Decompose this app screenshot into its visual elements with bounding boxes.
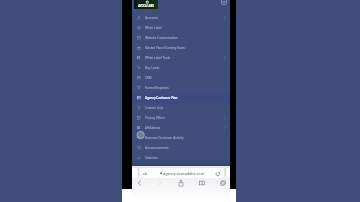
staticText: Custom Lists xyxy=(145,106,164,110)
staticText: AVOCA LABS xyxy=(134,4,158,7)
staticText: White Label xyxy=(145,26,162,30)
button[interactable]: Website Customization xyxy=(132,33,230,43)
button[interactable]: Business Customer Activity xyxy=(132,133,230,143)
button[interactable]: Affiliations xyxy=(132,123,230,133)
staticText: ᴀA xyxy=(143,171,147,175)
button[interactable]: Announcements xyxy=(132,143,230,153)
staticText: Agency Customer Plan xyxy=(145,96,178,100)
button[interactable]: CRM xyxy=(132,73,230,83)
button[interactable]: Forward xyxy=(156,178,166,188)
button[interactable]: Market Place (Coming Soon) xyxy=(132,43,230,53)
staticText: Business Customer Activity xyxy=(145,136,184,140)
button[interactable]: Close menu xyxy=(221,0,227,5)
button[interactable]: Tabs xyxy=(218,178,228,188)
staticText: Affiliations xyxy=(145,126,161,130)
button[interactable]: Avocado Labs home xyxy=(134,0,158,9)
staticText: CRM xyxy=(145,76,152,80)
staticText: Accounts xyxy=(145,16,159,20)
button[interactable]: Funnel Requests xyxy=(132,83,230,93)
button[interactable]: Back xyxy=(134,178,144,188)
staticText: White Label Tools xyxy=(145,56,171,60)
button[interactable]: ᴀA xyxy=(139,168,224,178)
staticText: agency.avocadabs.com xyxy=(163,171,205,176)
staticText: Statistics xyxy=(145,156,158,160)
staticText: Market Place (Coming Soon) xyxy=(145,46,186,50)
staticText: Funnel Requests xyxy=(145,86,169,90)
button[interactable]: Accounts xyxy=(132,13,230,23)
button[interactable]: Agency Customer Plan xyxy=(132,93,230,103)
button[interactable]: White Label xyxy=(132,23,230,33)
staticText: Announcements xyxy=(145,146,169,150)
button[interactable]: Bookmarks xyxy=(197,178,207,188)
button[interactable]: Share xyxy=(176,178,186,188)
button[interactable]: Buy Leads xyxy=(132,63,230,73)
button[interactable]: Pricing Offers xyxy=(132,113,230,123)
staticText: Buy Leads xyxy=(145,66,160,70)
staticText: Pricing Offers xyxy=(145,116,165,120)
button[interactable]: White Label Tools xyxy=(132,53,230,63)
button[interactable]: Custom Lists xyxy=(132,103,230,113)
staticText: Website Customization xyxy=(145,36,178,40)
button[interactable]: Statistics xyxy=(132,153,230,163)
